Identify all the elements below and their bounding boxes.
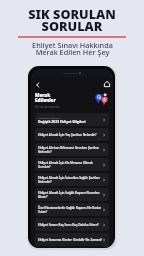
button[interactable]: Ehliyet Alırken Bilinmesi Gereken Şartla… bbox=[35, 143, 109, 156]
button[interactable]: Back bbox=[33, 80, 42, 89]
staticText: Özel Hastanelerde Sağlık Raporu Ne Kadar… bbox=[38, 206, 102, 213]
button[interactable]: Ehliyet Almak İçin Yaş Şartları Nelerdir… bbox=[35, 128, 109, 141]
staticText: Ehliyet Almak İçin İstenilen Sağlık Şart… bbox=[38, 176, 102, 183]
staticText: Ehliyet Sınavı Hakkında Merak Edilen Her… bbox=[32, 40, 113, 57]
staticText: Ehliyet Sınavına Kimler Girebilir Ne Zam… bbox=[38, 238, 102, 242]
staticText: Merak Edilenler bbox=[35, 92, 56, 104]
button[interactable]: Yenilikleri Nelerdir? bbox=[35, 113, 109, 126]
staticText: Değişik 2023 Ehliyet Bilgileri bbox=[38, 119, 86, 124]
staticText: Ehliyet Almak İçin Yaş Şartları Nelerdir… bbox=[38, 133, 102, 137]
button[interactable]: Ehliyet Almak İçin İstenilen Sağlık Şart… bbox=[35, 173, 109, 186]
button[interactable]: Ehliyet Sınavına Kimler Girebilir Ne Zam… bbox=[35, 233, 109, 246]
staticText: Sık sorulan sorular bbox=[35, 105, 60, 109]
button[interactable]: Ehliyet Almak İçin Sağlık Raporu Nereden… bbox=[35, 188, 109, 201]
button[interactable]: Ehliyet Sınavı Kaç Soru Kaç Dakika Sürer… bbox=[35, 218, 109, 231]
button[interactable]: Ehliyet Almak İçin Ne Mezunu Olmak Gerek… bbox=[35, 158, 109, 171]
button[interactable]: Questions and answers bbox=[94, 91, 109, 106]
staticText: Ehliyet Alırken Bilinmesi Gereken Şartla… bbox=[38, 146, 102, 153]
staticText: Ehliyet Almak İçin Sağlık Raporu Nereden… bbox=[38, 191, 102, 198]
staticText: Yenilikleri Nelerdir? bbox=[38, 116, 60, 119]
staticText: SIK SORULAN SORULAR bbox=[28, 5, 116, 34]
button[interactable]: Home bbox=[102, 79, 111, 88]
staticText: Ehliyet Almak İçin Ne Mezunu Olmak Gerek… bbox=[38, 161, 102, 168]
staticText: Ehliyet Sınavı Kaç Soru Kaç Dakika Sürer… bbox=[38, 223, 102, 227]
button[interactable]: Özel Hastanelerde Sağlık Raporu Ne Kadar… bbox=[35, 203, 109, 216]
